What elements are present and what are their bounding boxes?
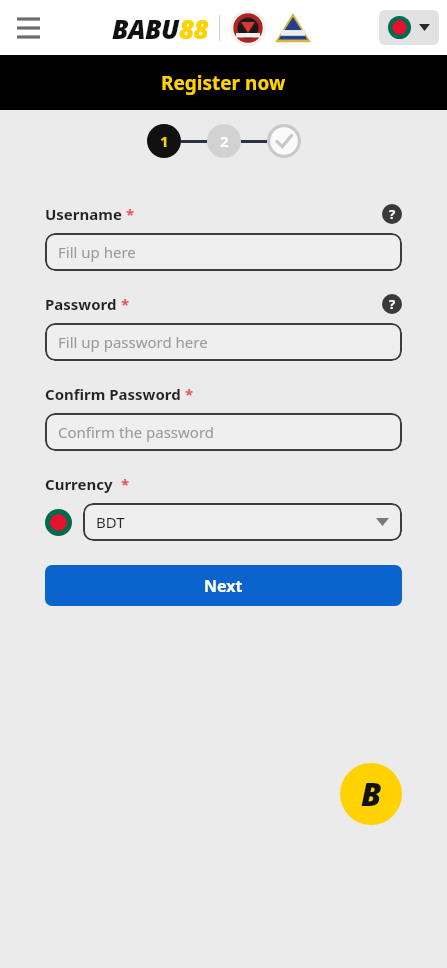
button[interactable]: 2 — [207, 124, 241, 158]
staticText: 2 — [220, 131, 229, 151]
staticText: * — [126, 204, 135, 224]
button[interactable]: Help — [382, 204, 402, 224]
button[interactable]: Menu — [6, 6, 50, 50]
staticText: Fill up here — [58, 242, 136, 262]
button[interactable]: Next — [45, 565, 402, 606]
staticText: Password — [45, 294, 117, 314]
button[interactable]: Select language — [379, 10, 439, 45]
staticText: Confirm the password — [58, 422, 215, 442]
staticText: Register now — [161, 70, 286, 96]
staticText: Username — [45, 204, 122, 224]
staticText: * — [121, 294, 130, 314]
staticText: * — [121, 474, 130, 494]
staticText: Currency — [45, 474, 113, 494]
button[interactable]: Fill up password here — [45, 323, 402, 361]
staticText: Next — [204, 575, 243, 597]
staticText: BDT — [96, 512, 125, 532]
button[interactable]: Help — [382, 294, 402, 314]
staticText: * — [185, 384, 194, 404]
button[interactable]: Register now — [0, 55, 447, 110]
staticText: BABU — [112, 11, 179, 46]
button[interactable]: BDT — [83, 503, 402, 541]
staticText: 88 — [179, 11, 209, 46]
button[interactable]: 1 — [147, 124, 181, 158]
staticText: B — [361, 772, 382, 816]
staticText: 1 — [160, 131, 169, 151]
button[interactable]: Step 3 — [267, 124, 301, 158]
button[interactable]: Fill up here — [45, 233, 402, 271]
staticText: Confirm Password — [45, 384, 181, 404]
button[interactable]: Confirm the password — [45, 413, 402, 451]
button[interactable]: Babu88 support — [340, 763, 402, 825]
staticText: ? — [389, 295, 396, 313]
staticText: ? — [389, 205, 396, 223]
staticText: Fill up password here — [58, 332, 208, 352]
